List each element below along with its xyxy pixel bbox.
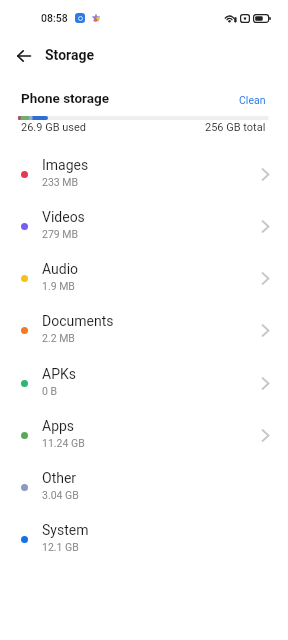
button[interactable] — [8, 44, 40, 68]
button[interactable]: Clean — [239, 94, 266, 106]
staticText: 26.9 GB used — [21, 121, 87, 134]
button[interactable]: Videos — [0, 202, 288, 254]
staticText: 08:58 — [41, 12, 68, 24]
staticText: 12.1 GB — [42, 541, 79, 553]
staticText: System — [42, 522, 89, 538]
staticText: 11.24 GB — [42, 437, 85, 449]
staticText: 3.04 GB — [42, 489, 79, 501]
staticText: Other — [42, 470, 77, 486]
button[interactable]: Other — [0, 463, 288, 515]
staticText: Clean — [239, 94, 266, 106]
staticText: 279 MB — [42, 228, 79, 240]
staticText: 2.2 MB — [42, 332, 75, 344]
staticText: Audio — [42, 261, 79, 277]
button[interactable]: System — [0, 515, 288, 567]
button[interactable]: Images — [0, 150, 288, 202]
staticText: Images — [42, 157, 89, 173]
staticText: Videos — [42, 209, 85, 225]
button[interactable]: Apps — [0, 411, 288, 463]
staticText: Storage — [45, 47, 95, 63]
button[interactable]: APKs — [0, 359, 288, 411]
staticText: Documents — [42, 313, 114, 329]
staticText: 0 B — [42, 385, 58, 397]
staticText: Phone storage — [21, 90, 110, 106]
staticText: Apps — [42, 418, 75, 434]
staticText: 256 GB total — [205, 121, 266, 134]
button[interactable]: Audio — [0, 254, 288, 306]
button[interactable]: Documents — [0, 306, 288, 358]
staticText: 233 MB — [42, 176, 79, 188]
staticText: APKs — [42, 366, 76, 382]
staticText: 1.9 MB — [42, 280, 75, 292]
